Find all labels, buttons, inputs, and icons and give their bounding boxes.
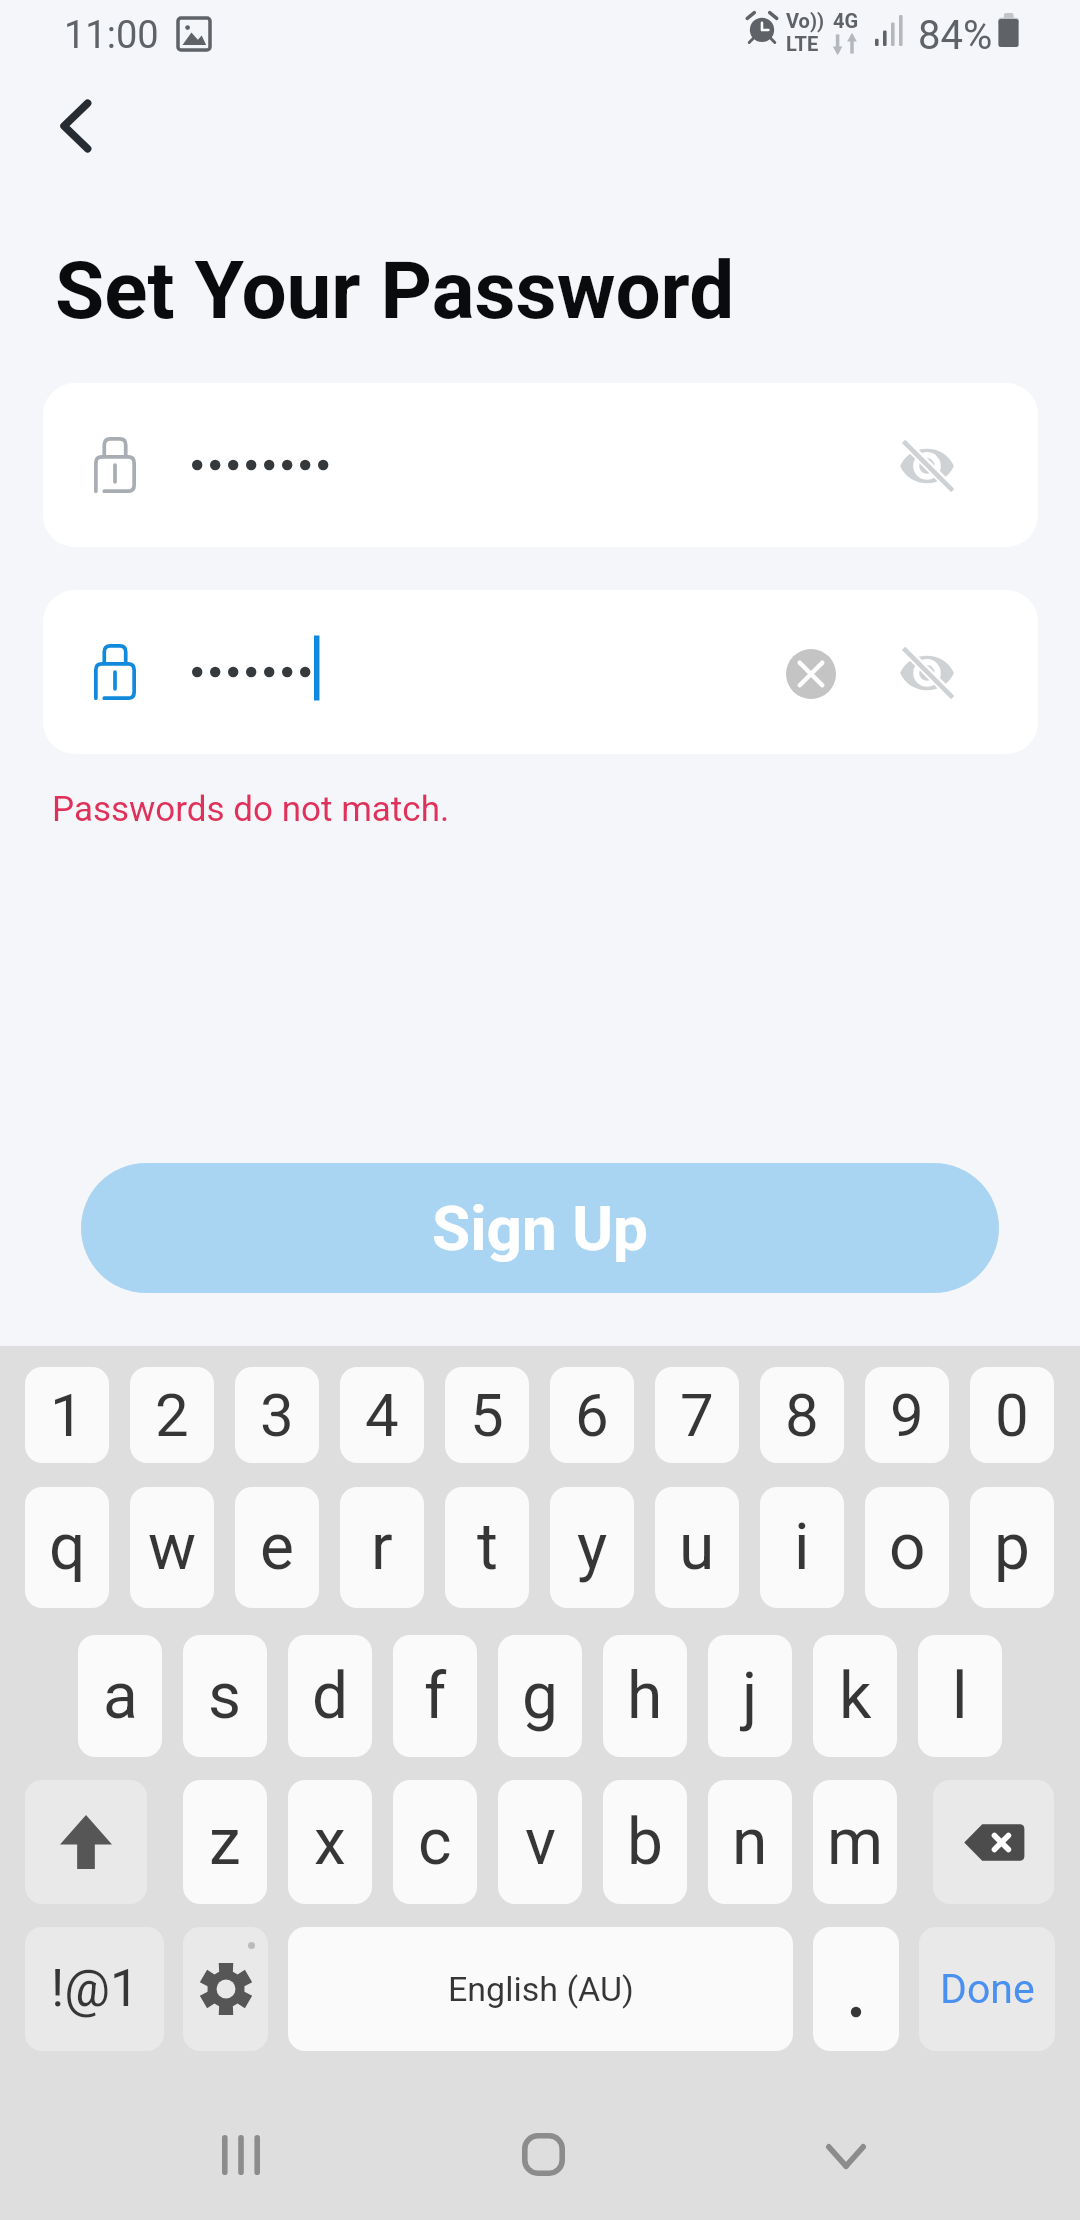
button[interactable]: Backspace: [933, 1780, 1054, 1904]
button[interactable]: Clear text: [767, 630, 855, 718]
staticText: v: [525, 1805, 556, 1880]
staticText: 8: [785, 1380, 819, 1450]
staticText: p: [994, 1510, 1030, 1585]
staticText: 0: [995, 1380, 1029, 1450]
staticText: English (AU): [448, 1969, 634, 2009]
button[interactable]: y: [550, 1487, 634, 1608]
staticText: w: [148, 1510, 197, 1585]
button[interactable]: Done: [919, 1927, 1055, 2051]
button[interactable]: !@1: [25, 1927, 164, 2051]
button[interactable]: 9: [865, 1367, 949, 1463]
staticText: Set Your Password: [55, 244, 735, 338]
staticText: j: [742, 1659, 758, 1734]
button[interactable]: English (AU): [288, 1927, 793, 2051]
staticText: e: [260, 1510, 294, 1585]
staticText: 84%: [918, 12, 993, 59]
button[interactable]: 7: [655, 1367, 739, 1463]
button[interactable]: 0: [970, 1367, 1054, 1463]
button[interactable]: g: [498, 1635, 582, 1757]
button[interactable]: Back: [42, 88, 118, 164]
staticText: n: [732, 1805, 768, 1880]
button[interactable]: u: [655, 1487, 739, 1608]
button[interactable]: b: [603, 1780, 687, 1904]
staticText: LTE: [786, 32, 819, 55]
button[interactable]: n: [708, 1780, 792, 1904]
button[interactable]: i: [760, 1487, 844, 1608]
button[interactable]: z: [183, 1780, 267, 1904]
staticText: r: [371, 1510, 393, 1585]
button[interactable]: x: [288, 1780, 372, 1904]
staticText: y: [577, 1510, 608, 1585]
staticText: Vo)): [786, 9, 824, 32]
staticText: 3: [260, 1380, 294, 1450]
staticText: c: [418, 1805, 452, 1880]
staticText: b: [627, 1805, 663, 1880]
staticText: d: [312, 1659, 349, 1734]
staticText: !@1: [51, 1959, 139, 2019]
staticText: 9: [890, 1380, 924, 1450]
button[interactable]: Show password: [43, 383, 1038, 547]
button[interactable]: Recents: [185, 2115, 297, 2195]
staticText: z: [209, 1805, 241, 1880]
staticText: 4G: [833, 9, 859, 32]
button[interactable]: Clear text: [43, 590, 1038, 754]
button[interactable]: c: [393, 1780, 477, 1904]
button[interactable]: r: [340, 1487, 424, 1608]
button[interactable]: 6: [550, 1367, 634, 1463]
button[interactable]: w: [130, 1487, 214, 1608]
button[interactable]: k: [813, 1635, 897, 1757]
button[interactable]: a: [78, 1635, 162, 1757]
button[interactable]: j: [708, 1635, 792, 1757]
staticText: 6: [575, 1380, 609, 1450]
button[interactable]: l: [918, 1635, 1002, 1757]
staticText: k: [839, 1659, 872, 1734]
staticText: t: [477, 1510, 498, 1585]
button[interactable]: p: [970, 1487, 1054, 1608]
button[interactable]: o: [865, 1487, 949, 1608]
button[interactable]: e: [235, 1487, 319, 1608]
staticText: x: [314, 1805, 346, 1880]
button[interactable]: 3: [235, 1367, 319, 1463]
staticText: s: [208, 1659, 242, 1734]
button[interactable]: Keyboard settings: [183, 1927, 268, 2051]
button[interactable]: 2: [130, 1367, 214, 1463]
button[interactable]: h: [603, 1635, 687, 1757]
staticText: a: [103, 1659, 138, 1734]
staticText: i: [794, 1510, 810, 1585]
button[interactable]: 5: [445, 1367, 529, 1463]
button[interactable]: m: [813, 1780, 897, 1904]
button[interactable]: Show password: [883, 421, 971, 509]
button[interactable]: t: [445, 1487, 529, 1608]
staticText: 1: [50, 1380, 84, 1450]
staticText: l: [952, 1659, 968, 1734]
button[interactable]: s: [183, 1635, 267, 1757]
staticText: m: [827, 1805, 884, 1880]
button[interactable]: 8: [760, 1367, 844, 1463]
staticText: q: [49, 1510, 86, 1585]
staticText: Done: [940, 1965, 1035, 2013]
button[interactable]: f: [393, 1635, 477, 1757]
staticText: h: [627, 1659, 663, 1734]
staticText: 2: [155, 1380, 189, 1450]
button[interactable]: Shift: [25, 1780, 147, 1904]
staticText: Sign Up: [432, 1192, 648, 1265]
staticText: g: [522, 1659, 558, 1734]
button[interactable]: v: [498, 1780, 582, 1904]
button[interactable]: Hide keyboard: [790, 2116, 902, 2196]
staticText: 5: [470, 1380, 504, 1450]
button[interactable]: Period: [813, 1927, 899, 2051]
staticText: f: [424, 1659, 447, 1734]
button[interactable]: 4: [340, 1367, 424, 1463]
button[interactable]: Home: [487, 2114, 599, 2194]
staticText: Passwords do not match.: [52, 789, 450, 830]
button[interactable]: 1: [25, 1367, 109, 1463]
staticText: u: [679, 1510, 715, 1585]
button[interactable]: Sign Up: [81, 1163, 999, 1293]
staticText: o: [889, 1510, 926, 1585]
staticText: 4: [365, 1380, 399, 1450]
staticText: 7: [680, 1380, 714, 1450]
staticText: 11:00: [64, 13, 159, 58]
button[interactable]: d: [288, 1635, 372, 1757]
button[interactable]: q: [25, 1487, 109, 1608]
button[interactable]: Show password: [883, 628, 971, 716]
